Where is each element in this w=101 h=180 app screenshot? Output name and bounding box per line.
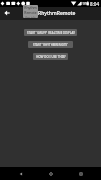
button[interactable]: HOW DO I USE THIS? bbox=[33, 53, 68, 60]
staticText: 19% bbox=[80, 1, 89, 7]
staticText: 8:04 bbox=[90, 1, 100, 7]
staticText: START 'RHYTHMREMOTE' bbox=[33, 43, 68, 47]
staticText: Remote bbox=[24, 10, 37, 15]
staticText: App info bbox=[25, 16, 36, 18]
button[interactable]: Home bbox=[46, 167, 56, 180]
staticText: RhythmRemote bbox=[38, 10, 76, 17]
button[interactable]: App info popup bbox=[23, 5, 38, 18]
staticText: START 'GRUFF' REALTIME DISPLAY bbox=[27, 31, 75, 35]
button[interactable]: Navigate up bbox=[0, 7, 13, 20]
button[interactable]: Recent apps bbox=[76, 167, 86, 180]
staticText: Rhythm bbox=[24, 5, 37, 10]
staticText: HOW DO I USE THIS? bbox=[36, 55, 66, 59]
button[interactable]: Back bbox=[16, 167, 26, 180]
button[interactable]: START 'GRUFF' REALTIME DISPLAY bbox=[24, 29, 77, 36]
button[interactable]: START 'RHYTHMREMOTE' bbox=[28, 41, 73, 48]
